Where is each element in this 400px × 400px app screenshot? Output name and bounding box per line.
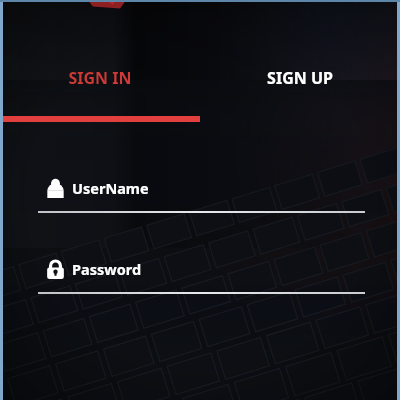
- button[interactable]: SIGN IN: [0, 56, 200, 100]
- staticText: Password: [72, 259, 142, 279]
- staticText: SIGN UP: [267, 67, 333, 89]
- button[interactable]: SIGN UP: [200, 56, 400, 100]
- button[interactable]: User name: [38, 177, 365, 213]
- other: Password: [38, 258, 72, 280]
- other: User name: [38, 177, 72, 199]
- staticText: UserName: [72, 178, 149, 198]
- staticText: SIGN IN: [68, 67, 132, 89]
- button[interactable]: Password: [38, 258, 365, 294]
